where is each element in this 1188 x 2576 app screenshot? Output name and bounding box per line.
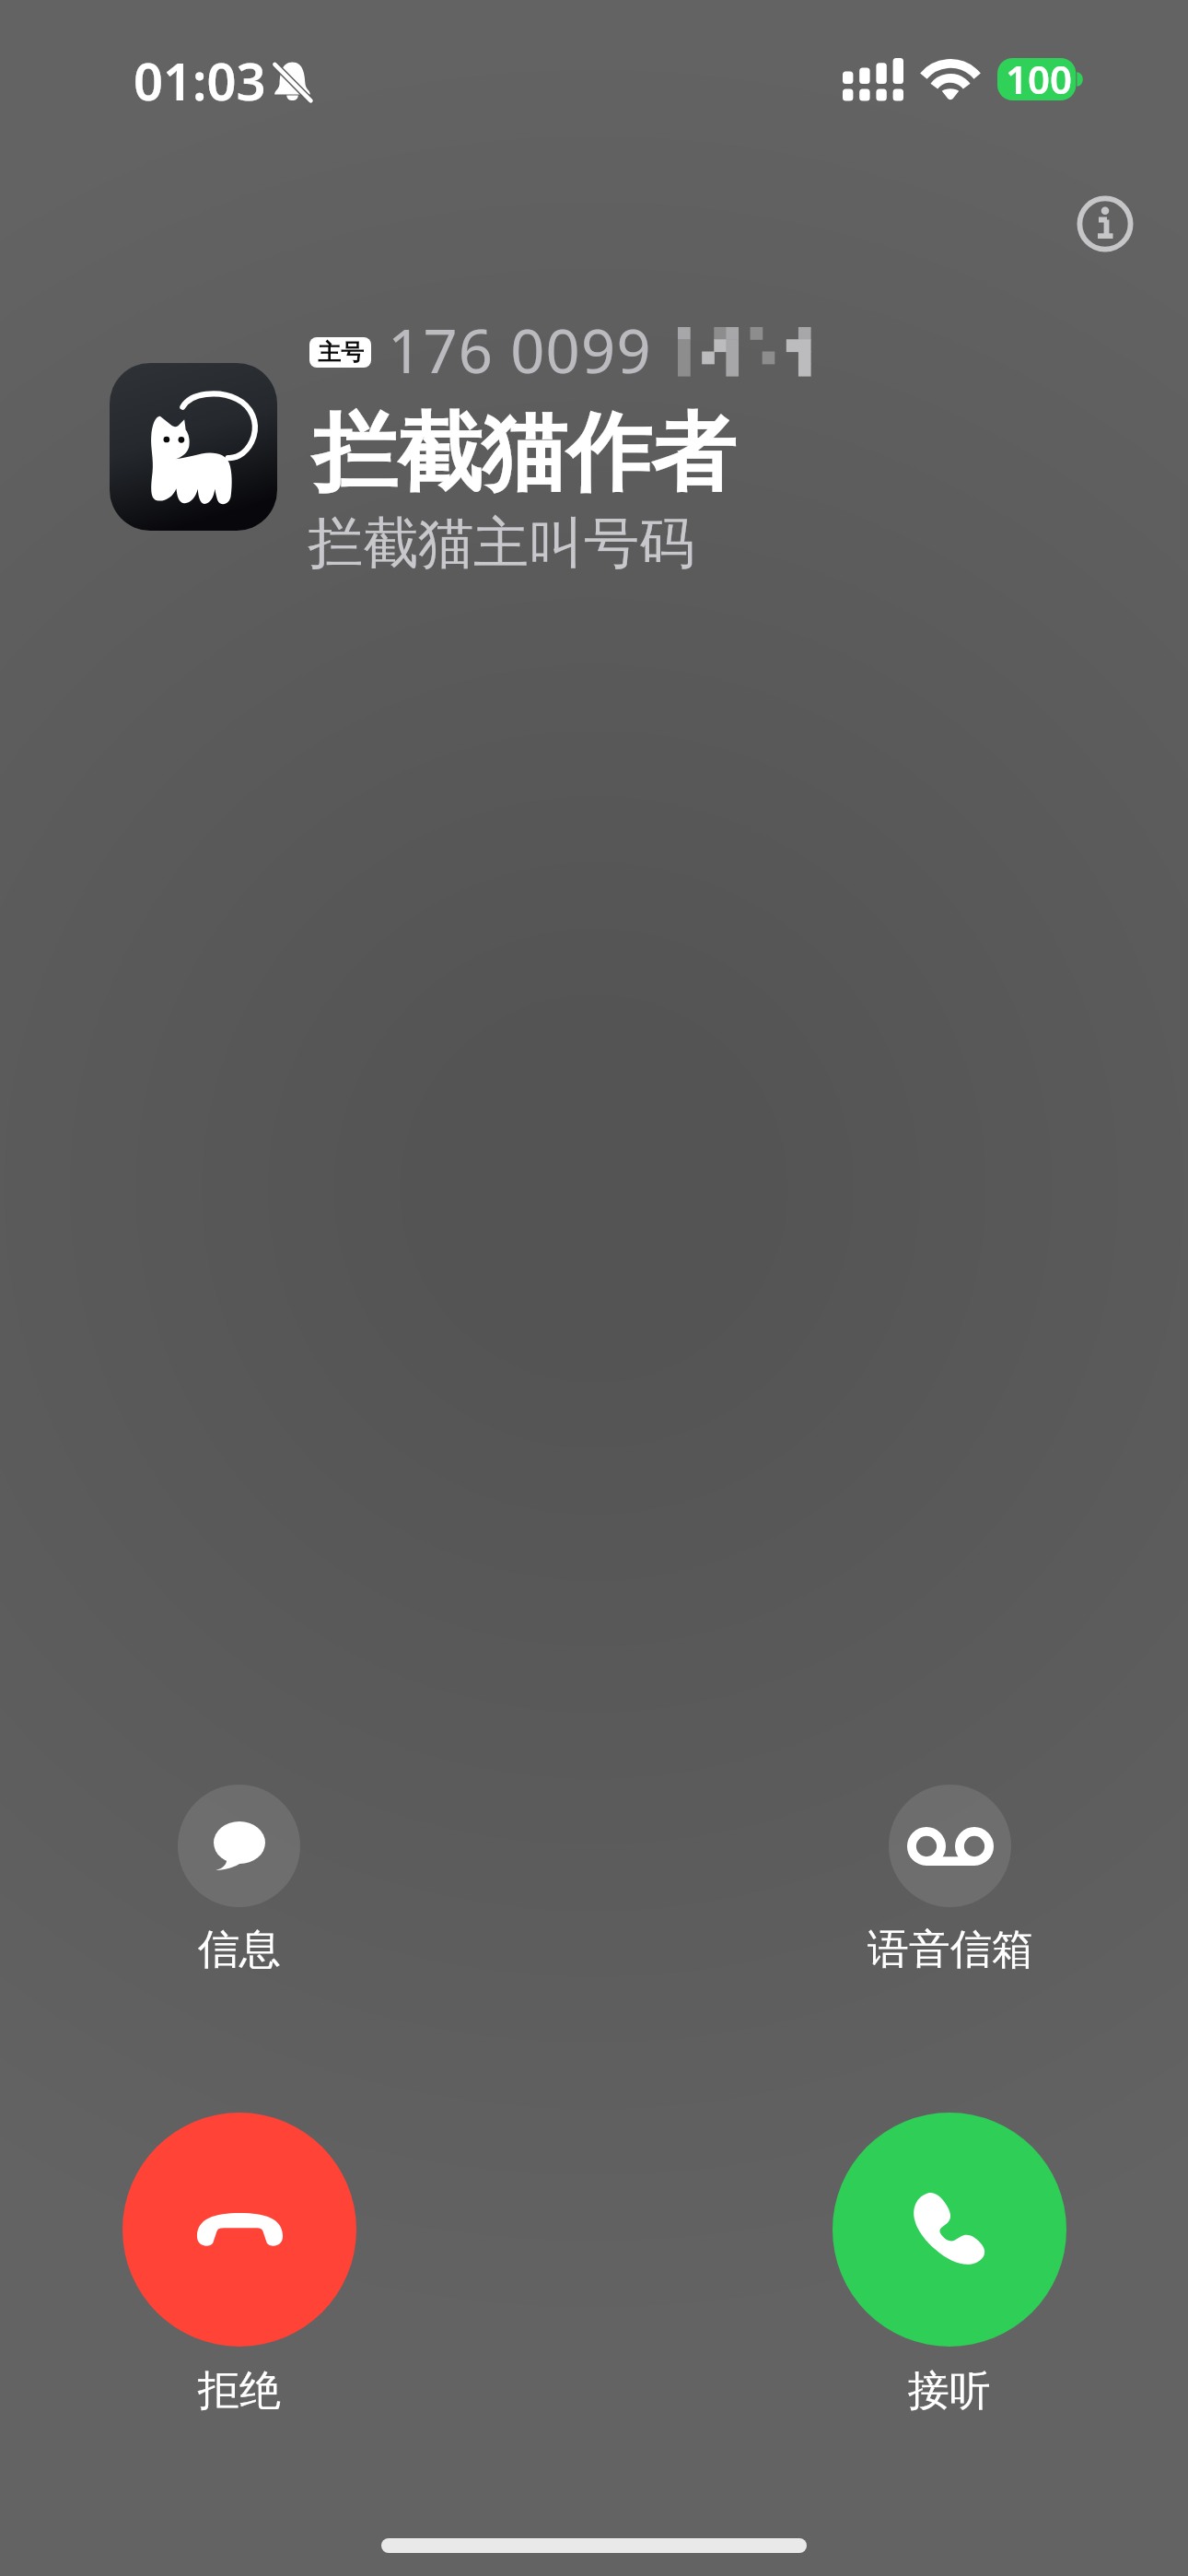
button[interactable]: 信息 bbox=[150, 1785, 328, 1976]
button[interactable]: 拒绝 bbox=[122, 2113, 356, 2418]
staticText: 语音信箱 bbox=[868, 1924, 1033, 1976]
staticText: 信息 bbox=[198, 1924, 281, 1976]
staticText: 主号 bbox=[318, 338, 364, 367]
staticText: 拦截猫作者 bbox=[312, 400, 736, 507]
button[interactable]: 语音信箱 bbox=[861, 1785, 1039, 1976]
staticText: 176 0099 bbox=[388, 310, 652, 392]
staticText: 100 bbox=[1006, 53, 1073, 105]
staticText: 接听 bbox=[908, 2365, 991, 2418]
staticText: 拒绝 bbox=[198, 2365, 281, 2418]
staticText: 拦截猫主叫号码 bbox=[308, 509, 694, 579]
staticText: 01:03 bbox=[134, 45, 266, 115]
button[interactable]: 接听 bbox=[833, 2113, 1066, 2418]
button[interactable]: Info bbox=[1064, 182, 1147, 265]
